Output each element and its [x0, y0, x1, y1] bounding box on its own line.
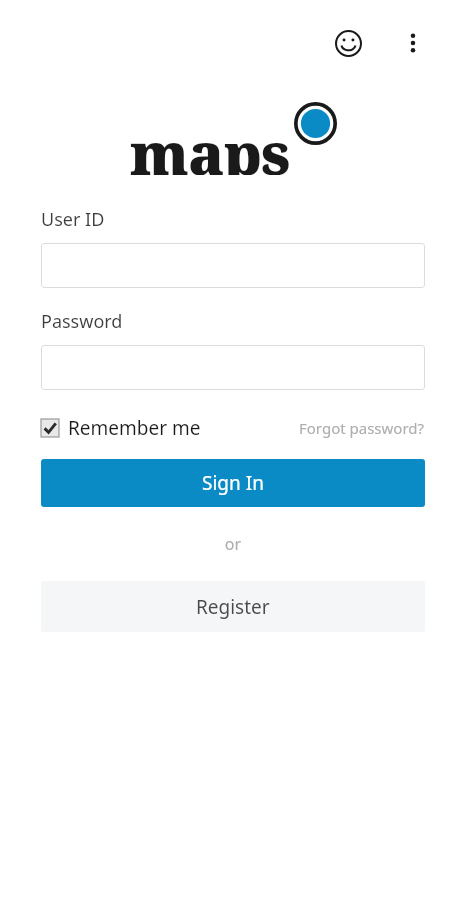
- staticText: or: [41, 533, 425, 555]
- staticText: User ID: [41, 207, 105, 232]
- staticText: Register: [196, 594, 270, 620]
- staticText: Sign In: [202, 470, 264, 496]
- button[interactable]: Sign In: [41, 459, 425, 507]
- button[interactable]: Feedback: [324, 19, 372, 67]
- button[interactable]: Text field: [41, 345, 425, 390]
- staticText: Forgot password?: [299, 418, 425, 438]
- button[interactable]: Remember me: [41, 412, 201, 444]
- button[interactable]: Forgot password?: [299, 415, 425, 441]
- staticText: Remember me: [68, 415, 201, 441]
- button[interactable]: Text field: [41, 243, 425, 288]
- staticText: Password: [41, 309, 123, 334]
- button[interactable]: More options: [389, 19, 437, 67]
- button[interactable]: Register: [41, 581, 425, 632]
- staticText: maps: [130, 113, 290, 175]
